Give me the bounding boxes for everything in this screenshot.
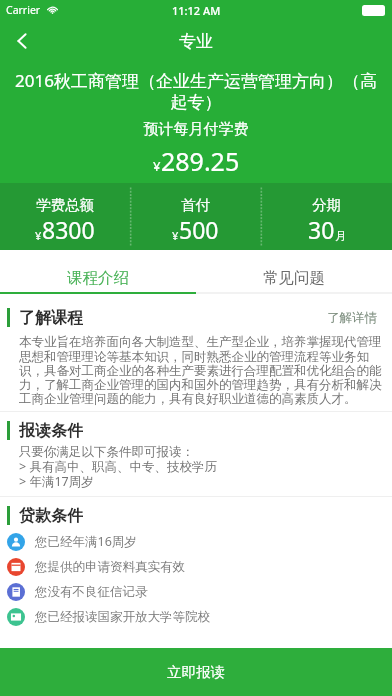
staticText: 289.25 <box>161 144 240 178</box>
staticText: 课程介绍 <box>67 268 129 288</box>
staticText: ¥ <box>172 228 179 243</box>
staticText: 月 <box>335 229 346 243</box>
button[interactable]: 立即报读 <box>0 648 392 696</box>
button[interactable]: 常见问题 <box>196 250 392 292</box>
button[interactable]: 了解详情 <box>327 310 377 326</box>
staticText: ¥ <box>153 157 161 175</box>
staticText: 本专业旨在培养面向各大制造型、生产型企业，培养掌握现代管理思想和管理理论等基本知… <box>19 334 382 406</box>
staticText: 您没有不良征信记录 <box>35 584 148 600</box>
staticText: Carrier <box>6 3 41 17</box>
staticText: 贷款条件 <box>19 506 83 525</box>
staticText: 500 <box>179 214 219 245</box>
staticText: 常见问题 <box>263 268 325 288</box>
staticText: 您提供的申请资料真实有效 <box>35 559 185 575</box>
staticText: 8300 <box>42 214 95 245</box>
staticText: 30 <box>308 214 335 245</box>
button[interactable]: Back <box>0 20 44 62</box>
staticText: 专业 <box>179 31 213 52</box>
staticText: 您已经报读国家开放大学等院校 <box>35 609 210 625</box>
staticText: 报读条件 <box>19 421 83 440</box>
staticText: 只要你满足以下条件即可报读： > 具有高中、职高、中专、技校学历 > 年满17周… <box>19 444 382 490</box>
staticText: 立即报读 <box>167 663 225 681</box>
staticText: 了解课程 <box>19 308 83 327</box>
staticText: 首付 <box>181 196 210 214</box>
staticText: 分期 <box>312 196 341 214</box>
button[interactable]: 课程介绍 <box>0 250 196 292</box>
staticText: 2016秋工商管理（企业生产运营管理方向）（高起专） <box>7 69 385 113</box>
staticText: 预计每月付学费 <box>0 120 392 139</box>
staticText: ¥ <box>35 228 42 243</box>
staticText: 您已经年满16周岁 <box>35 533 137 550</box>
staticText: 11:12 AM <box>172 3 221 18</box>
staticText: 学费总额 <box>36 196 94 214</box>
